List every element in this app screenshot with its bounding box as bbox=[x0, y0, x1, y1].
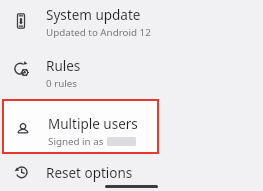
other: Reset options bbox=[13, 164, 29, 180]
staticText: 0 rules bbox=[46, 77, 77, 90]
staticText: Rules bbox=[46, 57, 81, 75]
staticText: Reset options bbox=[46, 164, 133, 182]
button[interactable]: System update bbox=[0, 0, 263, 50]
staticText: Multiple users bbox=[48, 115, 138, 133]
other: System update bbox=[13, 13, 29, 29]
other: Multiple users bbox=[15, 121, 31, 137]
button[interactable]: Reset options bbox=[0, 157, 263, 187]
button[interactable]: Rules bbox=[0, 51, 263, 97]
other: Rules bbox=[13, 61, 29, 77]
button[interactable]: Multiple users bbox=[4, 101, 157, 152]
staticText: Updated to Android 12 bbox=[46, 26, 151, 39]
staticText: Signed in as bbox=[48, 135, 104, 148]
staticText: System update bbox=[46, 6, 141, 24]
